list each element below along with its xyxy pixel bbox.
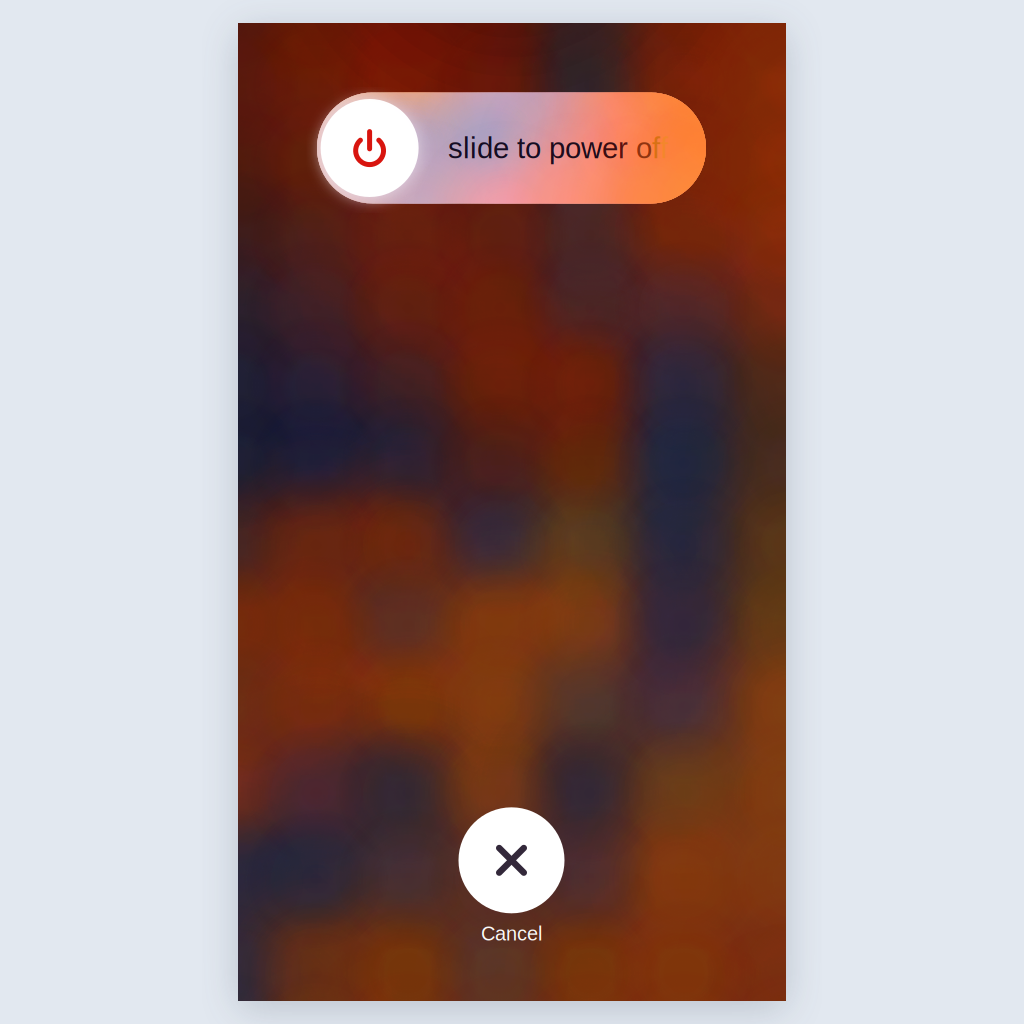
staticText: r <box>618 132 628 164</box>
button[interactable]: Cancel <box>436 807 586 945</box>
staticText: pow <box>549 132 602 164</box>
staticText: o <box>636 132 652 164</box>
staticText: f <box>660 132 668 164</box>
button[interactable]: slide to <box>317 92 706 203</box>
staticText: slide to <box>448 132 549 164</box>
staticText: e <box>602 132 618 164</box>
staticText: f <box>652 132 660 164</box>
staticText: Cancel <box>481 922 542 945</box>
